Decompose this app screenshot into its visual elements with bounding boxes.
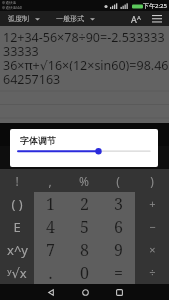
button[interactable]: 4 bbox=[34, 215, 67, 238]
staticText: sin bbox=[11, 129, 22, 140]
button[interactable]: ) bbox=[135, 169, 169, 192]
staticText: ʸ√x bbox=[7, 264, 27, 282]
button[interactable]: 一般形式 bbox=[52, 12, 99, 25]
button[interactable]: ÷ bbox=[135, 261, 169, 284]
staticText: , bbox=[48, 173, 52, 189]
staticText: + bbox=[149, 196, 156, 211]
button[interactable]: 2 bbox=[67, 192, 101, 215]
staticText: 9 bbox=[114, 239, 123, 261]
button[interactable]: % bbox=[67, 169, 101, 192]
staticText: E bbox=[13, 218, 21, 236]
button[interactable]: e bbox=[67, 146, 101, 169]
button[interactable]: E bbox=[0, 215, 34, 238]
staticText: 7 bbox=[46, 239, 55, 261]
staticText: 申通快递 bbox=[2, 1, 16, 5]
button[interactable]: 1 bbox=[34, 192, 67, 215]
button[interactable]: π bbox=[33, 146, 67, 169]
staticText: ( bbox=[116, 173, 120, 189]
staticText: 36×π+√16×(12×sin60)=98.46 bbox=[3, 57, 169, 71]
button[interactable]: log bbox=[135, 123, 169, 146]
staticText: 1 bbox=[46, 193, 55, 215]
button[interactable]: ʸ√x bbox=[0, 261, 34, 284]
staticText: 12+34-56×78÷90=-2.533333 bbox=[3, 29, 165, 43]
staticText: e bbox=[82, 152, 87, 163]
button[interactable]: ( ) bbox=[0, 192, 34, 215]
button[interactable]: tan bbox=[67, 123, 101, 146]
staticText: π bbox=[47, 152, 53, 163]
staticText: cos bbox=[44, 129, 57, 140]
button[interactable]: x^y bbox=[0, 238, 34, 261]
button[interactable]: Recents bbox=[102, 284, 136, 300]
button[interactable]: + bbox=[135, 192, 169, 215]
staticText: x^y bbox=[7, 241, 28, 259]
button[interactable]: ln bbox=[101, 123, 135, 146]
staticText: ( ) bbox=[11, 195, 23, 213]
button[interactable]: 5 bbox=[67, 215, 101, 238]
button[interactable]: ! bbox=[0, 169, 33, 192]
button[interactable]: 7 bbox=[34, 238, 67, 261]
button[interactable]: − bbox=[135, 215, 169, 238]
staticText: 2 bbox=[80, 193, 89, 215]
staticText: 33333 bbox=[3, 43, 39, 57]
staticText: . bbox=[48, 262, 53, 284]
button[interactable]: cos bbox=[33, 123, 67, 146]
button[interactable]: Back bbox=[34, 284, 68, 300]
staticText: DEL bbox=[9, 152, 24, 163]
button[interactable]: , bbox=[33, 169, 67, 192]
staticText: 字体调节 bbox=[20, 135, 56, 146]
staticText: 64257163 bbox=[3, 71, 61, 85]
button[interactable]: 8 bbox=[67, 238, 101, 261]
staticText: 3 bbox=[114, 193, 123, 215]
staticText: 6 bbox=[114, 216, 123, 238]
button[interactable]: 9 bbox=[101, 238, 135, 261]
staticText: ÷ bbox=[149, 265, 156, 280]
button[interactable]: × bbox=[135, 238, 169, 261]
button[interactable]: C bbox=[135, 146, 169, 169]
staticText: 下午2:25 bbox=[143, 2, 167, 10]
button[interactable]: 3 bbox=[101, 192, 135, 215]
staticText: × bbox=[149, 242, 156, 257]
button[interactable]: Menu bbox=[148, 11, 166, 26]
staticText: % bbox=[79, 173, 89, 189]
staticText: A bbox=[131, 13, 137, 25]
button[interactable]: 弧度制 bbox=[4, 12, 44, 25]
staticText: 4 bbox=[46, 216, 55, 238]
button[interactable]: sin bbox=[0, 123, 33, 146]
staticText: 一般形式 bbox=[56, 14, 84, 23]
staticText: 8 bbox=[80, 239, 89, 261]
staticText: ) bbox=[150, 173, 154, 189]
button[interactable]: . bbox=[34, 261, 67, 284]
button[interactable]: √ bbox=[101, 146, 135, 169]
button[interactable]: 6 bbox=[101, 215, 135, 238]
button[interactable]: DEL bbox=[0, 146, 33, 169]
button[interactable]: Font size bbox=[126, 11, 146, 26]
staticText: 弧度制 bbox=[8, 14, 29, 23]
button[interactable]: 0 bbox=[67, 261, 101, 284]
staticText: 0 bbox=[80, 262, 89, 284]
staticText: log bbox=[146, 129, 158, 140]
staticText: A bbox=[137, 14, 141, 22]
staticText: ! bbox=[15, 173, 19, 189]
staticText: − bbox=[149, 219, 156, 234]
button[interactable]: ( bbox=[101, 169, 135, 192]
staticText: 5 bbox=[80, 216, 89, 238]
staticText: 申通快递(44) bbox=[2, 5, 23, 10]
button[interactable]: = bbox=[101, 261, 135, 284]
staticText: = bbox=[114, 262, 123, 284]
button[interactable]: Home bbox=[68, 284, 102, 300]
